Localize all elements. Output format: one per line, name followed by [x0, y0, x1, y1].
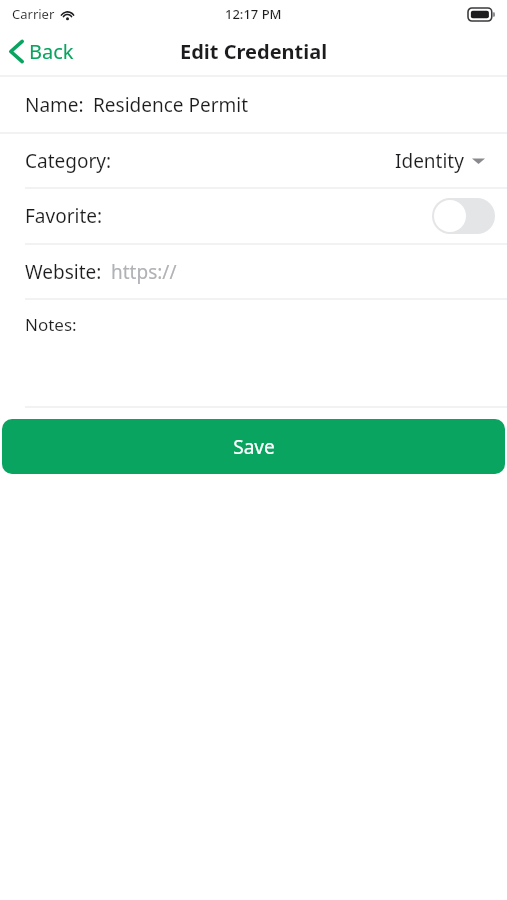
- staticText: Notes:: [25, 313, 77, 336]
- staticText: Back: [29, 38, 74, 65]
- staticText: Edit Credential: [180, 38, 328, 65]
- staticText: Favorite:: [25, 203, 103, 229]
- staticText: Name:: [25, 92, 84, 118]
- button[interactable]: Save: [2, 419, 505, 474]
- button[interactable]: Website:: [0, 245, 507, 298]
- button[interactable]: Name:: [0, 77, 507, 132]
- button[interactable]: Category:: [0, 134, 507, 187]
- button[interactable]: Favorite toggle, off: [432, 198, 495, 234]
- staticText: https://: [111, 259, 177, 285]
- staticText: Residence Permit: [93, 92, 249, 118]
- staticText: Identity: [395, 148, 464, 174]
- button[interactable]: Back: [0, 34, 84, 69]
- staticText: Category:: [25, 148, 112, 174]
- staticText: Save: [233, 434, 275, 460]
- staticText: 12:17 PM: [225, 5, 282, 23]
- staticText: Website:: [25, 259, 102, 285]
- button[interactable]: Notes:: [0, 300, 507, 406]
- staticText: Carrier: [12, 5, 55, 23]
